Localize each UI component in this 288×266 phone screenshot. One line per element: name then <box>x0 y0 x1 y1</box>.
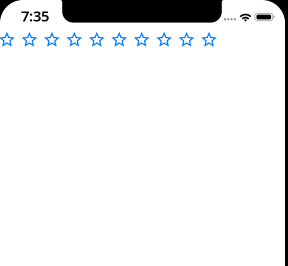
button[interactable]: Rate <box>0 33 14 47</box>
button[interactable]: Rate <box>22 33 36 47</box>
button[interactable]: Rate <box>67 33 81 47</box>
button[interactable]: Rate <box>135 33 149 47</box>
button[interactable]: Rate <box>45 33 59 47</box>
button[interactable]: Rate <box>112 33 126 47</box>
button[interactable]: Rate <box>90 33 104 47</box>
button[interactable]: Rate <box>157 33 171 47</box>
staticText: 7:35 <box>21 6 49 25</box>
button[interactable]: Rate <box>202 33 216 47</box>
button[interactable]: Rate <box>180 33 194 47</box>
